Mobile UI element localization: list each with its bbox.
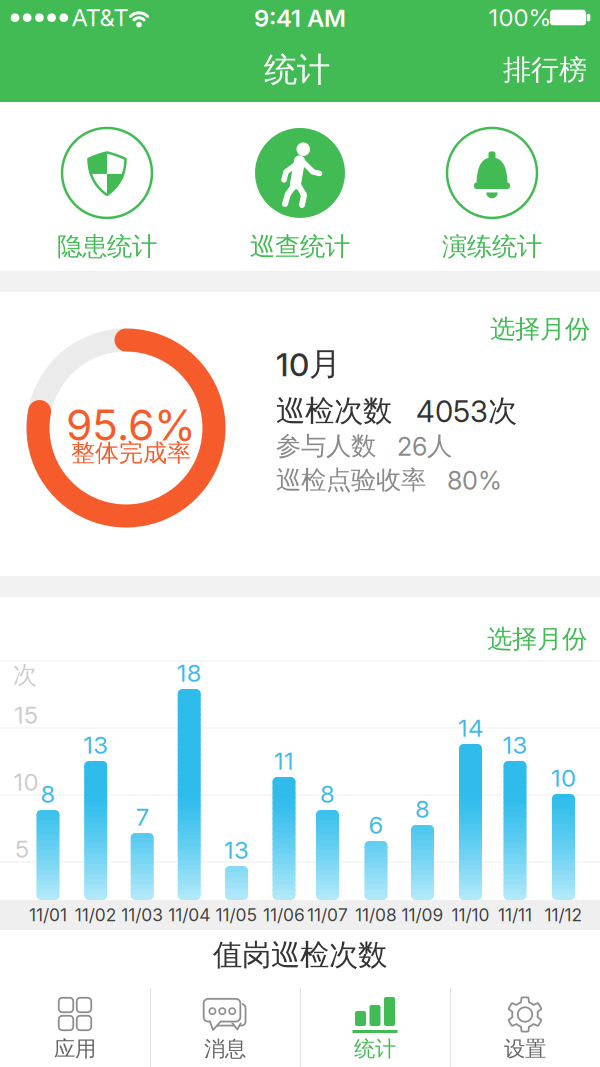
staticText: 10 [13, 768, 38, 796]
staticText: 11/04 [168, 905, 210, 925]
button[interactable]: 消息 [150, 988, 300, 1067]
staticText: 13 [502, 731, 527, 759]
staticText: 11 [274, 747, 294, 775]
staticText: 14 [458, 714, 483, 742]
staticText: 消息 [204, 1036, 246, 1062]
staticText: 11/09 [401, 905, 443, 925]
button[interactable]: 应用 [0, 988, 150, 1067]
staticText: 巡检点验收率 80% [276, 464, 502, 495]
staticText: 8 [415, 795, 430, 823]
button[interactable]: 隐患统计 [57, 128, 157, 262]
staticText: 8 [40, 780, 55, 808]
staticText: 值岗巡检次数 [213, 937, 387, 973]
staticText: 100% [488, 3, 551, 32]
staticText: 11/12 [544, 905, 582, 925]
button[interactable]: 巡查统计 [250, 128, 350, 262]
staticText: 11/11 [498, 905, 532, 925]
staticText: 11/06 [263, 905, 305, 925]
staticText: 18 [177, 659, 202, 687]
staticText: 5 [15, 835, 29, 863]
staticText: 整体完成率 [71, 438, 191, 468]
staticText: 11/10 [451, 905, 489, 925]
button[interactable]: 选择月份 [470, 307, 600, 351]
staticText: 次 [13, 660, 37, 690]
staticText: 13 [224, 836, 249, 864]
staticText: 11/02 [75, 905, 117, 925]
staticText: 13 [83, 731, 108, 759]
button[interactable]: 统计 [300, 988, 450, 1067]
staticText: 设置 [504, 1036, 546, 1062]
staticText: 11/01 [29, 905, 67, 925]
staticText: 7 [136, 803, 149, 831]
staticText: 应用 [54, 1036, 96, 1062]
staticText: 巡查统计 [250, 231, 350, 262]
staticText: 95.6% [66, 400, 196, 450]
staticText: AT&T [71, 3, 128, 32]
staticText: 演练统计 [442, 231, 542, 262]
staticText: 11/07 [307, 905, 348, 925]
staticText: 15 [14, 701, 38, 729]
staticText: 11/08 [355, 905, 397, 925]
staticText: 11/03 [121, 905, 163, 925]
staticText: 统计 [354, 1036, 396, 1062]
staticText: 8 [320, 780, 335, 808]
staticText: 巡检次数 4053次 [276, 393, 517, 429]
staticText: 参与人数 26人 [276, 430, 452, 461]
staticText: 排行榜 [503, 53, 587, 87]
staticText: 隐患统计 [57, 231, 157, 262]
button[interactable]: 排行榜 [485, 42, 600, 98]
staticText: 选择月份 [487, 623, 587, 654]
button[interactable]: 选择月份 [467, 617, 600, 661]
staticText: 统计 [264, 49, 330, 90]
staticText: 10 [551, 764, 576, 792]
staticText: 9:41 AM [254, 4, 346, 32]
staticText: 10月 [276, 344, 341, 384]
staticText: 选择月份 [490, 313, 590, 344]
button[interactable]: 设置 [450, 988, 600, 1067]
button[interactable]: 演练统计 [442, 128, 542, 262]
staticText: 11/05 [215, 905, 257, 925]
staticText: 6 [368, 811, 383, 839]
